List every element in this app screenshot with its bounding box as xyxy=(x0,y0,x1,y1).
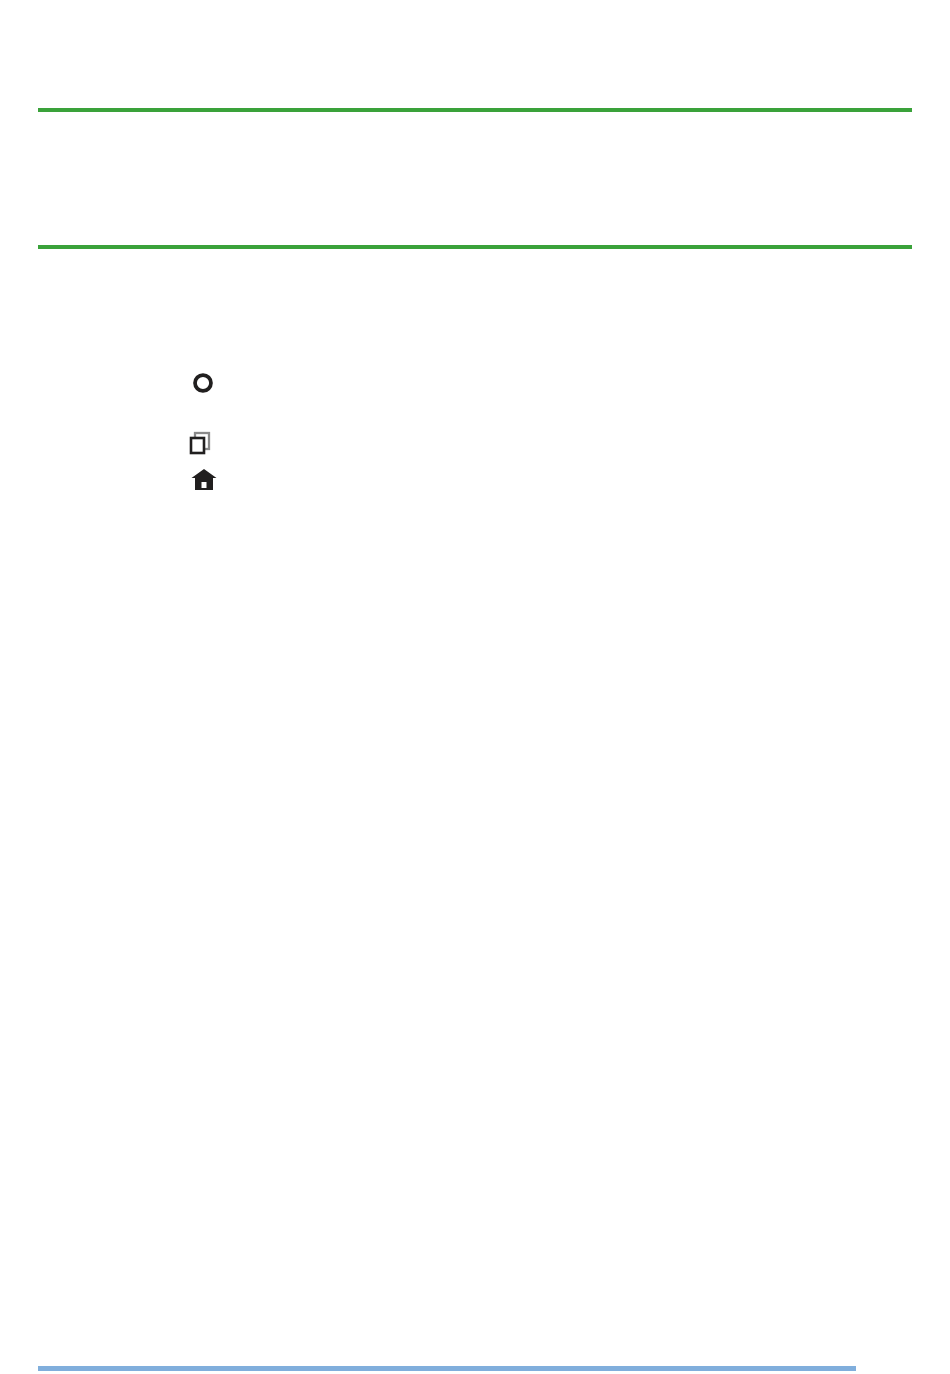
button[interactable]: Home xyxy=(190,466,218,492)
button[interactable]: Record xyxy=(191,371,215,395)
button[interactable]: Copy xyxy=(188,431,214,457)
